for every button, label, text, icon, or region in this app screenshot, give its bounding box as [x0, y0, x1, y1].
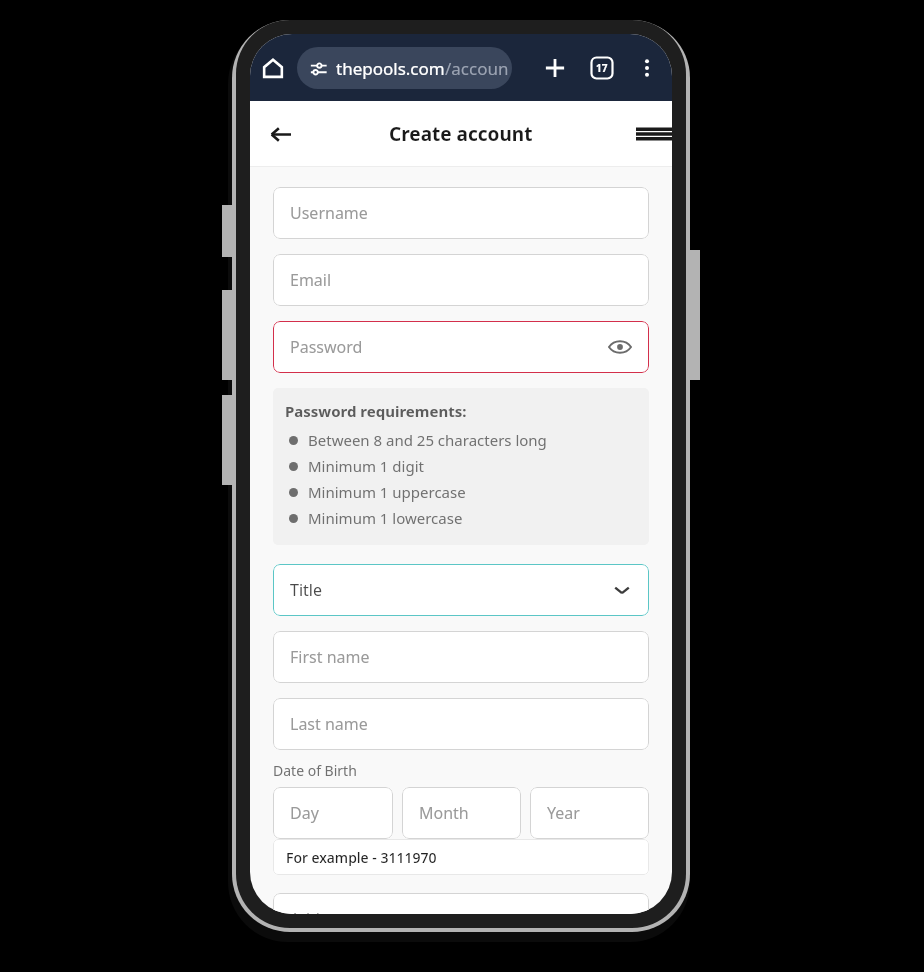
button[interactable]: Back	[262, 116, 298, 152]
button[interactable]: Menu	[632, 114, 672, 154]
button[interactable]: Password	[273, 321, 649, 373]
button[interactable]: First name	[273, 631, 649, 683]
staticText: Minimum 1 uppercase	[308, 482, 466, 502]
staticText: Username	[290, 202, 368, 224]
button[interactable]: Email	[273, 254, 649, 306]
button[interactable]: Username	[273, 187, 649, 239]
button[interactable]: More options	[635, 56, 659, 80]
staticText: Password	[290, 336, 363, 358]
staticText: Day	[290, 802, 319, 824]
button[interactable]: Tabs: 17	[590, 56, 614, 80]
staticText: thepools.com	[336, 57, 445, 80]
other: Open title list	[612, 580, 632, 600]
staticText: First name	[290, 646, 370, 668]
staticText: Create account	[389, 121, 533, 147]
button[interactable]: Title	[273, 564, 649, 616]
button[interactable]: Last name	[273, 698, 649, 750]
staticText: Minimum 1 digit	[308, 456, 424, 476]
button[interactable]: Day	[273, 787, 393, 839]
button[interactable]: Year	[530, 787, 649, 839]
other: Show password	[608, 335, 632, 359]
staticText: Title	[290, 579, 322, 601]
button[interactable]: Address	[273, 893, 649, 914]
staticText: For example - 3111970	[286, 848, 437, 867]
staticText: Date of Birth	[273, 761, 357, 780]
staticText: Email	[290, 269, 332, 291]
staticText: Password requirements:	[285, 401, 467, 421]
staticText: Year	[547, 802, 580, 824]
staticText: Address	[290, 908, 351, 914]
staticText: 17	[596, 61, 608, 75]
button[interactable]: thepools.com	[297, 47, 512, 89]
button[interactable]: Month	[402, 787, 521, 839]
staticText: Last name	[290, 713, 368, 735]
button[interactable]: Home	[260, 55, 286, 81]
staticText: Between 8 and 25 characters long	[308, 430, 547, 450]
staticText: Month	[419, 802, 469, 824]
staticText: Minimum 1 lowercase	[308, 508, 463, 528]
button[interactable]: New tab	[543, 56, 567, 80]
staticText: /accoun	[445, 57, 509, 80]
